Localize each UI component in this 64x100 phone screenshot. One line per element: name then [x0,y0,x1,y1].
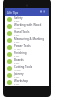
staticText: Workshop [14,79,29,83]
staticText: 5 tips [14,41,20,44]
button[interactable]: Measuring & Marking [5,37,49,44]
staticText: Finishing [14,51,27,55]
staticText: Measuring & Marking [14,37,44,41]
button[interactable]: Life Tips [5,8,49,16]
staticText: Hand Tools [14,30,30,34]
button[interactable]: Working with Wood [5,23,49,30]
staticText: Boards [14,58,24,62]
staticText: Working with Wood [14,23,42,27]
staticText: 10 tips [14,69,21,72]
staticText: 11 tips [14,48,21,51]
staticText: 12 tips [14,27,21,30]
staticText: 7 tips [14,34,20,37]
staticText: 4 tips [14,76,20,79]
button[interactable]: Cutting Tools [5,65,49,72]
staticText: Safety [14,16,23,20]
button[interactable]: Joinery [5,72,49,79]
button[interactable]: Finishing [5,51,49,58]
staticText: 8 tips [14,62,20,65]
staticText: 6 tips [14,55,20,58]
button[interactable]: Hand Tools [5,30,49,37]
button[interactable]: Workshop [5,79,49,86]
staticText: 6 tips [14,83,20,86]
staticText: Cutting Tools [14,65,33,69]
staticText: Life Tips [7,11,19,15]
staticText: Power Tools [14,44,31,48]
button[interactable]: Power Tools [5,44,49,51]
button[interactable]: Safety [5,16,49,23]
button[interactable]: Boards [5,58,49,65]
staticText: Joinery [14,72,24,76]
staticText: 9 tips [14,20,20,23]
